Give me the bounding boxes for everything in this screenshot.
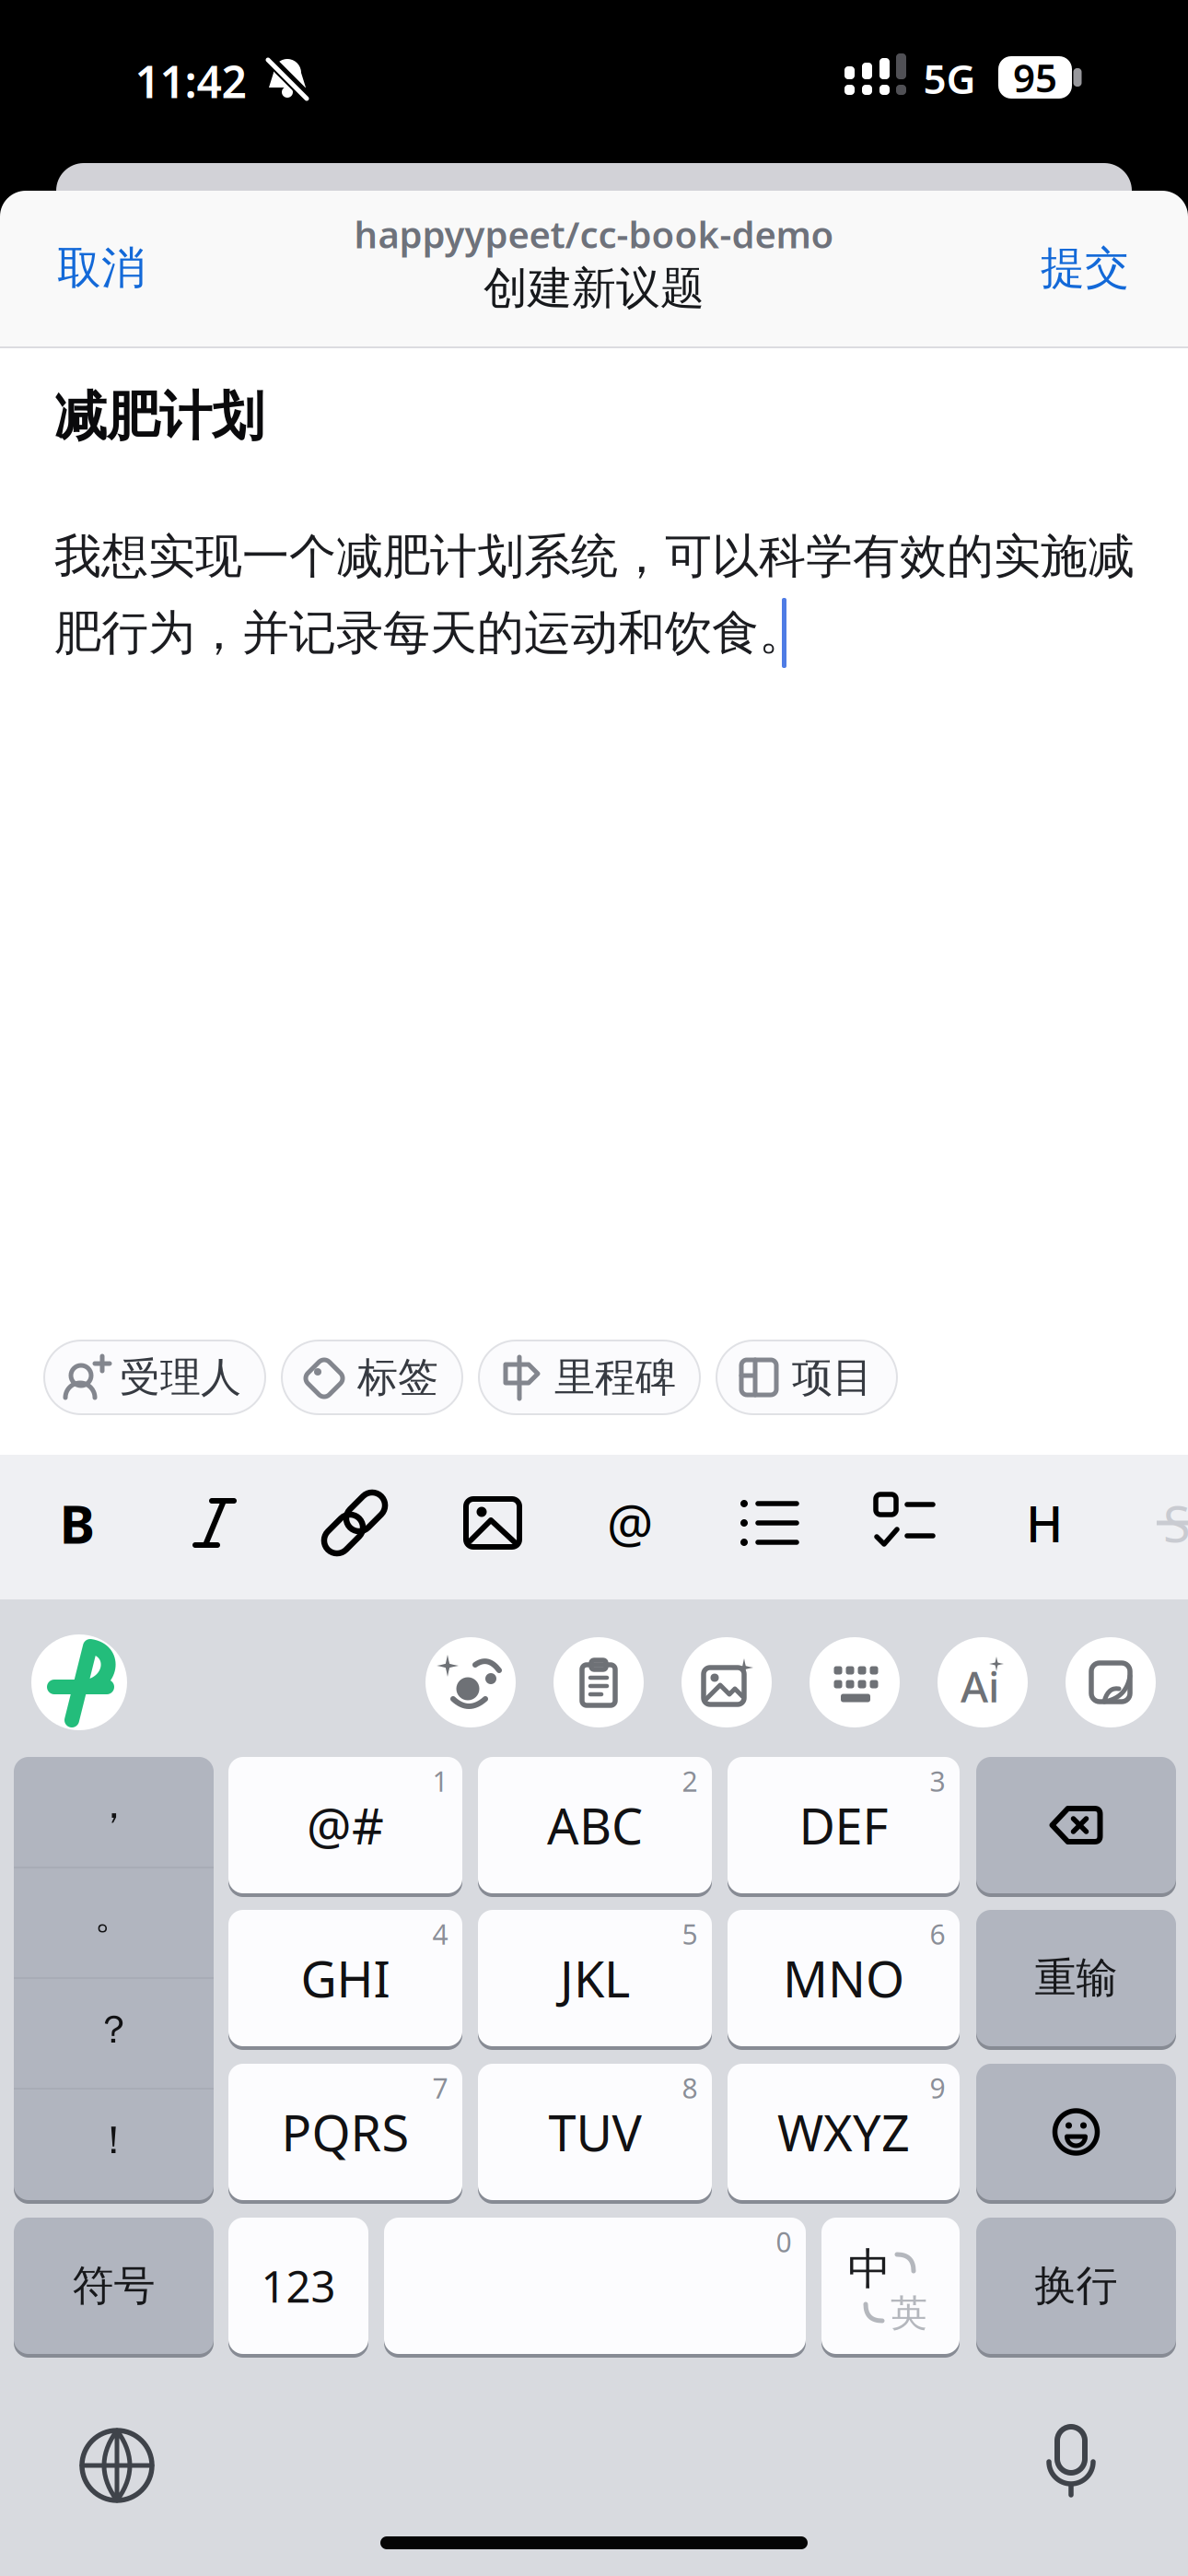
button[interactable]: Keyboard layout <box>809 1637 900 1727</box>
button[interactable]: 取消 <box>57 241 146 295</box>
staticText: S <box>1163 1490 1188 1556</box>
button[interactable]: 受理人 <box>44 1341 265 1414</box>
button[interactable]: 标点符号 <box>14 1757 214 2200</box>
button[interactable]: 下一个输入法 <box>80 2429 154 2502</box>
staticText: 5G <box>923 51 976 105</box>
staticText: 11:42 <box>135 52 246 110</box>
button[interactable]: 符号 <box>14 2218 214 2354</box>
button[interactable]: WXYZ <box>728 2064 960 2200</box>
button[interactable]: JKL <box>478 1910 712 2046</box>
staticText: 6 <box>930 1916 945 1952</box>
staticText: 2 <box>682 1763 698 1799</box>
staticText: 。 <box>94 1892 133 1939</box>
staticText: 我想实现一个减肥计划系统，可以科学有效的实施减 <box>54 528 1135 585</box>
staticText: 英 <box>891 2291 927 2336</box>
staticText: MNO <box>783 1945 904 2011</box>
button[interactable]: MNO <box>728 1910 960 2046</box>
staticText: H <box>1026 1490 1063 1556</box>
button[interactable]: Page tools <box>1066 1637 1156 1727</box>
button[interactable]: Bulleted list <box>740 1493 800 1553</box>
button[interactable]: 项目 <box>716 1341 897 1414</box>
button[interactable]: Bold <box>59 1487 95 1558</box>
button[interactable]: 里程碑 <box>479 1341 700 1414</box>
button[interactable]: Insert image <box>462 1493 523 1553</box>
staticText: Ai <box>961 1658 999 1714</box>
staticText: GHI <box>301 1945 390 2011</box>
staticText: 换行 <box>1035 2260 1118 2311</box>
staticText: @ <box>607 1489 653 1557</box>
button[interactable]: Image tools <box>681 1637 772 1727</box>
button[interactable]: 提交 <box>1041 241 1129 295</box>
staticText: B <box>59 1487 95 1558</box>
staticText: ？ <box>94 2006 133 2053</box>
staticText: 123 <box>261 2257 336 2315</box>
staticText: 项目 <box>792 1352 873 1402</box>
staticText: WXYZ <box>777 2099 910 2165</box>
staticText: 8 <box>682 2069 698 2106</box>
staticText: 7 <box>432 2069 448 2106</box>
staticText: 9 <box>930 2069 945 2106</box>
button[interactable]: Clipboard <box>553 1637 644 1727</box>
button[interactable]: 标签 <box>282 1341 462 1414</box>
button[interactable]: Stickers <box>425 1637 516 1727</box>
button[interactable]: 123 <box>228 2218 368 2354</box>
button[interactable]: Link <box>324 1493 385 1553</box>
button[interactable]: PQRS <box>228 2064 462 2200</box>
button[interactable]: ABC <box>478 1757 712 1893</box>
button[interactable]: Mention <box>607 1489 653 1557</box>
button[interactable]: 删除 <box>976 1757 1176 1893</box>
button[interactable]: Italic <box>184 1493 245 1553</box>
staticText: 符号 <box>72 2260 155 2311</box>
staticText: 肥行为，并记录每天的运动和饮食。 <box>54 604 806 662</box>
staticText: @# <box>307 1792 384 1858</box>
staticText: 95 <box>1013 52 1057 103</box>
staticText: 减肥计划 <box>54 384 264 449</box>
staticText: ABC <box>547 1792 643 1858</box>
staticText: 里程碑 <box>554 1352 676 1402</box>
staticText: 5 <box>682 1916 698 1952</box>
button[interactable]: 换行 <box>976 2218 1176 2354</box>
staticText: JKL <box>560 1945 630 2011</box>
staticText: 标签 <box>357 1352 438 1402</box>
staticText: 0 <box>776 2223 792 2260</box>
staticText: ， <box>94 1781 133 1829</box>
button[interactable]: 重输 <box>976 1910 1176 2046</box>
staticText: happyypeet/cc-book-demo <box>354 210 834 259</box>
button[interactable]: 中英切换 <box>821 2218 960 2354</box>
staticText: 3 <box>930 1763 945 1799</box>
button[interactable]: 听写 <box>1046 2425 1096 2499</box>
button[interactable]: TUV <box>478 2064 712 2200</box>
button[interactable]: DEF <box>728 1757 960 1893</box>
button[interactable]: AI assistant <box>938 1637 1028 1727</box>
button[interactable]: 空格 <box>384 2218 806 2354</box>
staticText: PQRS <box>281 2099 409 2165</box>
staticText: 中 <box>848 2243 891 2296</box>
staticText: TUV <box>548 2099 641 2165</box>
staticText: 创建新议题 <box>483 261 705 316</box>
button[interactable]: 表情 <box>976 2064 1176 2200</box>
button[interactable]: @# <box>228 1757 462 1893</box>
button[interactable]: GHI <box>228 1910 462 2046</box>
staticText: 受理人 <box>120 1352 241 1402</box>
staticText: 取消 <box>57 241 146 295</box>
button[interactable]: Heading <box>1026 1490 1063 1556</box>
staticText: 4 <box>432 1916 448 1952</box>
staticText: 提交 <box>1041 241 1129 295</box>
staticText: 重输 <box>1035 1953 1118 2004</box>
button[interactable]: Task list <box>874 1493 935 1553</box>
staticText: 1 <box>432 1763 448 1799</box>
staticText: DEF <box>799 1792 888 1858</box>
staticText: ！ <box>94 2116 133 2164</box>
button[interactable]: Input method <box>31 1634 127 1730</box>
